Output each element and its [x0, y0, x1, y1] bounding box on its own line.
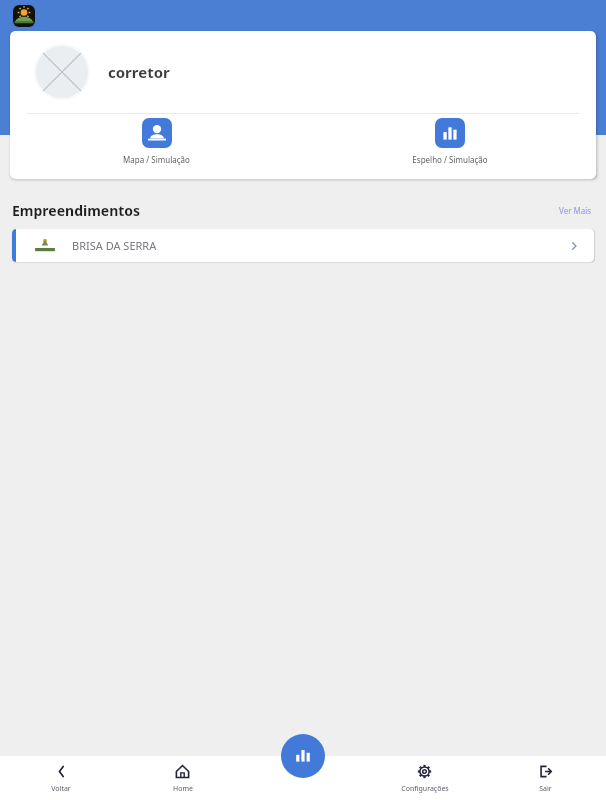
staticText: corretor	[108, 62, 170, 82]
staticText: Home	[173, 784, 193, 794]
button[interactable]: App logo	[13, 5, 35, 27]
staticText: BRISA DA SERRA	[72, 238, 157, 253]
button[interactable]: Sair	[485, 756, 606, 800]
button[interactable]: Configurações	[364, 756, 485, 800]
button[interactable]: BRISA DA SERRA	[12, 229, 594, 262]
other: Abrir	[566, 238, 582, 254]
button[interactable]: Voltar	[0, 756, 122, 800]
button[interactable]: Espelho / Simulação	[303, 114, 596, 179]
staticText: Configurações	[401, 784, 449, 794]
staticText: Mapa / Simulação	[123, 154, 190, 165]
button[interactable]: Ver Mais	[557, 203, 594, 218]
button[interactable]: Home	[122, 756, 243, 800]
staticText: Ver Mais	[559, 205, 592, 216]
button[interactable]: Mapa / Simulação	[10, 114, 303, 179]
staticText: Empreendimentos	[12, 201, 141, 220]
button[interactable]: Simulação	[281, 734, 325, 778]
staticText: Voltar	[51, 784, 71, 794]
staticText: Espelho / Simulação	[412, 154, 488, 165]
staticText: Sair	[539, 784, 552, 794]
